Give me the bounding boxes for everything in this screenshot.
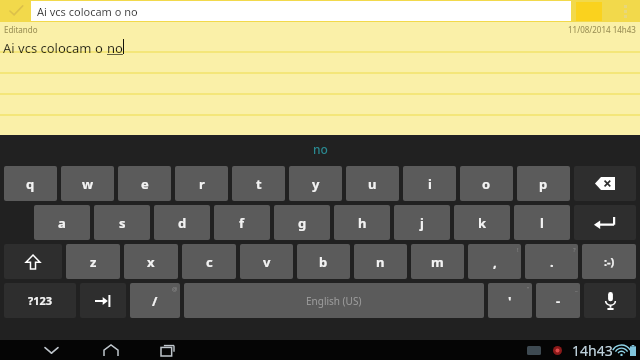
staticText: n [376,253,385,271]
button[interactable]: Shift [4,244,62,279]
staticText: a [58,214,66,232]
staticText: d [178,214,187,232]
button[interactable]: n [354,244,407,279]
staticText: ? [573,246,576,254]
staticText: , [493,253,497,271]
button[interactable]: English (US) [184,283,484,318]
staticText: m [431,253,444,271]
button[interactable]: / [130,283,180,318]
button[interactable]: i [403,166,456,201]
staticText: r [199,175,205,193]
button[interactable]: Recent apps [154,340,180,360]
staticText: p [539,175,548,193]
button[interactable]: k [454,205,510,240]
button[interactable]: r [175,166,228,201]
staticText: . [550,253,554,271]
staticText: ?123 [28,293,53,308]
button[interactable]: :-) [582,244,636,279]
button[interactable]: m [411,244,464,279]
staticText: z [90,253,97,271]
staticText: - [556,292,561,310]
button[interactable]: - [536,283,580,318]
button[interactable]: Tab [80,283,126,318]
button[interactable]: Ai vcs colocam o no [31,1,571,21]
button[interactable]: z [66,244,120,279]
staticText: q [26,175,35,193]
staticText: u [368,175,377,193]
button[interactable]: . [525,244,578,279]
staticText: h [358,214,367,232]
staticText: 14h43 [572,341,613,360]
button[interactable]: ?123 [4,283,76,318]
button[interactable]: y [289,166,342,201]
button[interactable]: g [274,205,330,240]
button[interactable]: Keyboard [527,346,541,355]
staticText: l [540,214,544,232]
staticText: g [298,214,307,232]
button[interactable]: h [334,205,390,240]
button[interactable]: v [240,244,293,279]
staticText: v [263,253,271,271]
staticText: @ [172,285,178,293]
button[interactable]: Home [98,340,124,360]
staticText: " [527,285,530,293]
staticText: no [313,141,328,157]
button[interactable]: q [4,166,57,201]
staticText: _ [575,285,578,293]
button[interactable]: s [94,205,150,240]
button[interactable]: ' [488,283,532,318]
staticText: b [319,253,328,271]
button[interactable]: e [118,166,171,201]
staticText: Ai vcs colocam o no [37,4,138,19]
staticText: o [482,175,491,193]
staticText: k [478,214,487,232]
button[interactable]: Back [38,340,64,360]
staticText: / [152,292,158,310]
staticText: e [141,175,149,193]
staticText: c [206,253,213,271]
staticText: Editando [4,24,38,35]
staticText: no [107,39,123,57]
button[interactable]: p [517,166,570,201]
button[interactable]: c [182,244,236,279]
button[interactable]: j [394,205,450,240]
button[interactable]: More options [614,0,636,22]
button[interactable]: d [154,205,210,240]
staticText: 11/08/2014 14h43 [568,24,636,35]
button[interactable]: w [61,166,114,201]
button[interactable]: Save note [0,0,31,22]
staticText: i [428,175,432,193]
staticText: ! [517,246,519,254]
button[interactable]: Enter [574,205,636,240]
button[interactable]: a [34,205,90,240]
staticText: s [119,214,126,232]
staticText: Ai vcs colocam o [3,39,107,57]
staticText: ' [508,292,512,310]
staticText: English (US) [306,294,362,308]
button[interactable]: Voice input [584,283,636,318]
staticText: j [420,214,424,232]
staticText: y [312,175,320,193]
button[interactable]: u [346,166,399,201]
button[interactable]: x [124,244,178,279]
button[interactable]: l [514,205,570,240]
staticText: x [147,253,155,271]
staticText: w [82,175,94,193]
button[interactable]: Backspace [574,166,636,201]
button[interactable]: f [214,205,270,240]
staticText: :-) [604,254,615,269]
button[interactable]: no [0,135,640,163]
button[interactable]: t [232,166,285,201]
button[interactable]: b [297,244,350,279]
staticText: t [256,175,262,193]
staticText: f [239,214,245,232]
button[interactable]: o [460,166,513,201]
button[interactable]: , [468,244,521,279]
